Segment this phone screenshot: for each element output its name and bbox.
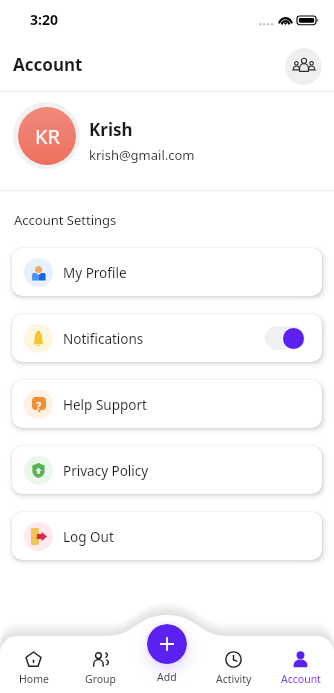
staticText: Home: [19, 672, 49, 686]
button[interactable]: Home: [0, 636, 67, 693]
button[interactable]: Account: [267, 636, 334, 693]
staticText: Activity: [216, 672, 252, 686]
staticText: Account Settings: [14, 211, 117, 229]
button[interactable]: Activity: [200, 636, 267, 693]
button[interactable]: ?: [12, 380, 322, 428]
staticText: Privacy Policy: [63, 462, 149, 480]
staticText: ?: [36, 398, 42, 413]
button[interactable]: Log Out: [12, 512, 322, 560]
staticText: Notifications: [63, 330, 144, 348]
staticText: KR: [35, 123, 60, 150]
staticText: Add: [157, 670, 177, 684]
button[interactable]: KR: [0, 92, 334, 190]
staticText: Log Out: [63, 528, 114, 546]
button[interactable]: My Profile: [12, 248, 322, 296]
button[interactable]: Notifications toggle: [265, 326, 305, 350]
button[interactable]: Add: [147, 624, 187, 664]
staticText: Krish: [89, 118, 133, 141]
staticText: Account: [13, 53, 83, 76]
staticText: Account: [281, 672, 321, 686]
staticText: My Profile: [63, 264, 127, 282]
staticText: krish@gmail.com: [89, 146, 195, 164]
staticText: Help Support: [63, 396, 147, 414]
button[interactable]: Group: [67, 636, 134, 693]
button[interactable]: Privacy Policy: [12, 446, 322, 494]
staticText: Group: [85, 672, 117, 686]
staticText: 3:20: [30, 10, 58, 29]
button[interactable]: Groups: [285, 48, 322, 85]
button[interactable]: Notifications: [12, 314, 322, 362]
